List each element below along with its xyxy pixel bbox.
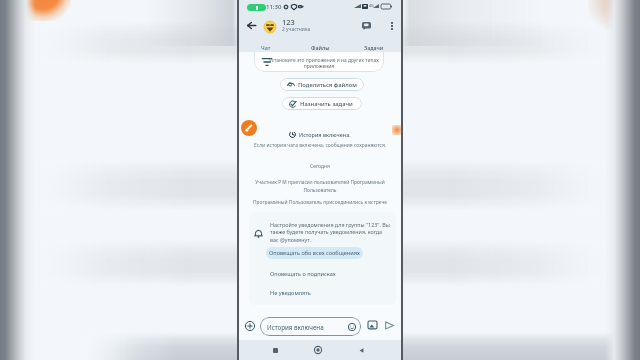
staticText: Участник P M пригласил пользователей Про… xyxy=(253,179,387,193)
staticText: Настройте уведомления для группы "123". … xyxy=(270,221,392,244)
staticText: Сегодня xyxy=(239,163,401,170)
button[interactable]: Gallery xyxy=(365,318,380,333)
button[interactable]: Back xyxy=(244,18,259,33)
button[interactable]: Оповещать о подписках xyxy=(268,269,338,279)
button[interactable]: Файлы xyxy=(293,41,347,53)
button[interactable]: История включена xyxy=(260,317,361,336)
staticText: Оповещать обо всех сообщениях xyxy=(269,249,360,257)
button[interactable]: Поделиться файлом xyxy=(280,78,364,91)
staticText: 2 участника xyxy=(282,26,311,33)
button[interactable]: Add attachment xyxy=(242,318,258,334)
button[interactable]: Video call xyxy=(359,18,374,33)
staticText: 11:30 xyxy=(266,3,282,11)
staticText: установите это приложение и на других ти… xyxy=(268,57,380,64)
staticText: Не уведомлять xyxy=(270,289,311,297)
button[interactable]: Задачи xyxy=(347,41,401,53)
button[interactable]: Назначить задачи xyxy=(282,97,362,110)
button[interactable]: Recent apps xyxy=(265,340,285,360)
staticText: Файлы xyxy=(311,44,330,51)
staticText: История включена xyxy=(267,323,348,331)
staticText: Назначить задачи xyxy=(300,100,353,108)
staticText: Задачи xyxy=(364,44,384,51)
button[interactable]: Home xyxy=(308,340,328,360)
button[interactable]: Чат xyxy=(239,41,293,53)
staticText: Поделиться файлом xyxy=(298,81,357,89)
button[interactable]: установите это приложение и на других ти… xyxy=(254,52,384,72)
button[interactable]: Compose xyxy=(241,120,257,136)
staticText: Оповещать о подписках xyxy=(270,270,336,278)
staticText: Программный Пользователь присоединились … xyxy=(241,199,399,206)
staticText: 123 xyxy=(282,17,295,27)
button[interactable]: Back xyxy=(351,340,371,360)
staticText: 4G xyxy=(369,3,374,8)
staticText: История включена. xyxy=(299,131,351,138)
staticText: Если история чата включена, сообщения со… xyxy=(241,142,399,149)
button[interactable]: More options xyxy=(384,18,399,33)
button[interactable]: Send xyxy=(382,318,397,333)
staticText: приложения xyxy=(254,63,384,70)
button[interactable]: Оповещать обо всех сообщениях xyxy=(266,247,363,259)
staticText: Чат xyxy=(261,44,271,51)
button[interactable]: Не уведомлять xyxy=(268,288,313,298)
